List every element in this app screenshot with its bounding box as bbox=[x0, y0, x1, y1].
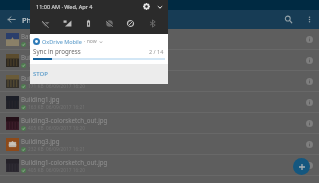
staticText: Barcelona.jpg bbox=[21, 32, 61, 40]
button[interactable]: Barcelona.jpg bbox=[0, 29, 319, 50]
button[interactable]: Building.jpg bbox=[0, 71, 319, 92]
button[interactable]: Search bbox=[277, 10, 299, 29]
staticText: 405 KB 06/09/2017 16:20 bbox=[28, 125, 86, 132]
staticText: 171 KB 06/09/2017 16:20 bbox=[28, 41, 86, 48]
staticText: Building1-colorsketch_out.jpg bbox=[21, 158, 108, 166]
button[interactable]: Building.jpg bbox=[0, 50, 319, 71]
button[interactable]: Info bbox=[299, 155, 319, 176]
button[interactable]: Add bbox=[293, 158, 310, 175]
staticText: Photos bbox=[22, 15, 47, 25]
staticText: Building.jpg bbox=[21, 53, 56, 61]
staticText: Sync in progress bbox=[33, 47, 81, 55]
button[interactable]: More options bbox=[299, 10, 319, 29]
button[interactable]: Do not disturb bbox=[101, 15, 118, 32]
staticText: 163 KB 06/09/2017 16:21 bbox=[28, 104, 86, 111]
button[interactable]: Expand quick settings bbox=[153, 0, 166, 13]
button[interactable]: Settings bbox=[140, 0, 153, 13]
button[interactable]: Info bbox=[299, 92, 319, 113]
button[interactable]: Auto rotate bbox=[122, 15, 139, 32]
button[interactable]: Mobile data bbox=[59, 15, 76, 32]
staticText: 11:00 AM · Wed, Apr 4 bbox=[36, 3, 93, 10]
staticText: Building.jpg bbox=[21, 74, 56, 82]
button[interactable]: Building1-colorsketch_out.jpg bbox=[0, 155, 319, 176]
staticText: Building1.jpg bbox=[21, 95, 60, 103]
staticText: STOP bbox=[33, 70, 48, 78]
button[interactable]: STOP bbox=[33, 64, 55, 84]
button[interactable]: Wi-Fi bbox=[37, 15, 54, 32]
button[interactable]: Back bbox=[0, 10, 22, 29]
button[interactable]: Info bbox=[299, 29, 319, 50]
staticText: 171 KB 06/09/2017 16:20 bbox=[28, 62, 86, 69]
button[interactable]: Building3-colorsketch_out.jpg bbox=[0, 113, 319, 134]
button[interactable]: Battery saver bbox=[80, 15, 97, 32]
staticText: 232 KB 06/09/2017 16:21 bbox=[28, 146, 86, 153]
staticText: 2 / 14 bbox=[149, 48, 164, 55]
button[interactable]: Building3.jpg bbox=[0, 134, 319, 155]
button[interactable]: Building1.jpg bbox=[0, 92, 319, 113]
staticText: Building3.jpg bbox=[21, 137, 60, 145]
button[interactable]: Info bbox=[299, 71, 319, 92]
button[interactable]: Bluetooth bbox=[144, 15, 161, 32]
button[interactable]: Info bbox=[299, 50, 319, 71]
button[interactable]: Info bbox=[299, 134, 319, 155]
staticText: Building3-colorsketch_out.jpg bbox=[21, 116, 108, 124]
staticText: OxDrive Mobile bbox=[42, 38, 82, 45]
staticText: 171 KB 06/09/2017 16:20 bbox=[28, 83, 86, 90]
button[interactable]: Info bbox=[299, 113, 319, 134]
staticText: 405 KB 06/09/2017 16:20 bbox=[28, 167, 86, 174]
staticText: · now bbox=[84, 38, 97, 45]
